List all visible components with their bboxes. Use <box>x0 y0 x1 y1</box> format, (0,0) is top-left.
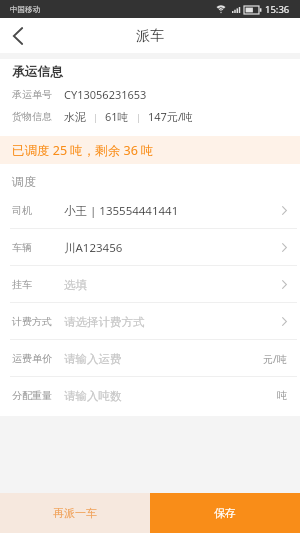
staticText: 元/吨 <box>263 352 287 366</box>
staticText: 请选择计费方式 <box>64 315 145 329</box>
staticText: 运费单价 <box>12 352 52 365</box>
staticText: 保存 <box>214 506 236 520</box>
staticText: 承运单号 <box>12 88 52 101</box>
staticText: 选填 <box>64 278 87 292</box>
staticText: 15:36 <box>265 3 290 16</box>
staticText: 水泥 <box>64 110 86 124</box>
button[interactable]: 运费单价 <box>0 340 300 377</box>
button[interactable]: 司机 <box>0 192 300 229</box>
staticText: 吨 <box>277 389 287 402</box>
staticText: 承运信息 <box>12 64 64 80</box>
button[interactable]: Back <box>0 18 36 53</box>
staticText: 车辆 <box>12 241 32 254</box>
staticText: 计费方式 <box>12 315 52 328</box>
staticText: 请输入运费 <box>64 352 122 366</box>
button[interactable]: 再派一车 <box>0 493 150 533</box>
staticText: | <box>86 111 105 123</box>
staticText: 调度 <box>12 174 36 189</box>
staticText: 川A123456 <box>64 240 123 256</box>
button[interactable]: 计费方式 <box>0 303 300 340</box>
staticText: 挂车 <box>12 278 32 291</box>
staticText: 派车 <box>136 27 164 45</box>
staticText: CY13056231653 <box>64 87 147 102</box>
staticText: 请输入吨数 <box>64 389 122 403</box>
staticText: 再派一车 <box>53 506 97 520</box>
staticText: 分配重量 <box>12 389 52 402</box>
staticText: 司机 <box>12 204 32 217</box>
staticText: | <box>129 111 148 123</box>
staticText: 已调度 25 吨，剩余 36 吨 <box>12 142 154 159</box>
staticText: 货物信息 <box>12 110 52 123</box>
staticText: 中国移动 <box>10 5 40 14</box>
button[interactable]: 挂车 <box>0 266 300 303</box>
staticText: 61吨 <box>105 109 129 124</box>
staticText: 147元/吨 <box>148 109 193 124</box>
button[interactable]: 分配重量 <box>0 377 300 414</box>
button[interactable]: 车辆 <box>0 229 300 266</box>
staticText: 小王 | 135554441441 <box>64 203 179 219</box>
button[interactable]: 保存 <box>150 493 300 533</box>
